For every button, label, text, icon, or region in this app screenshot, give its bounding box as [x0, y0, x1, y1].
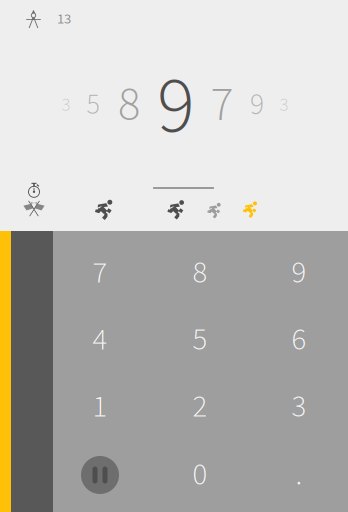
- button[interactable]: Run: [85, 187, 125, 231]
- button[interactable]: 7: [52, 240, 148, 306]
- button[interactable]: 5: [152, 307, 248, 373]
- staticText: .: [295, 453, 302, 497]
- button[interactable]: 8: [152, 240, 248, 306]
- button[interactable]: Interval: [236, 187, 266, 231]
- staticText: 4: [92, 318, 107, 362]
- staticText: 9: [250, 84, 264, 126]
- button[interactable]: Lap timer: [11, 176, 57, 222]
- staticText: 2: [192, 385, 207, 429]
- staticText: 3: [61, 92, 70, 118]
- staticText: 1: [92, 385, 107, 429]
- button[interactable]: 2: [152, 374, 248, 440]
- staticText: 8: [192, 251, 207, 295]
- staticText: 3: [279, 92, 288, 118]
- button[interactable]: 13: [0, 1, 85, 37]
- button[interactable]: Pace: [160, 187, 194, 231]
- button[interactable]: 1: [52, 374, 148, 440]
- staticText: 9: [157, 51, 195, 163]
- staticText: 9: [291, 251, 306, 295]
- button[interactable]: Speed: [200, 188, 230, 232]
- staticText: 6: [291, 318, 306, 362]
- button[interactable]: Pause: [81, 456, 119, 494]
- staticText: 0: [192, 453, 207, 497]
- staticText: 8: [118, 72, 140, 138]
- staticText: 7: [210, 71, 233, 139]
- button[interactable]: 4: [52, 307, 148, 373]
- button[interactable]: 6: [251, 307, 347, 373]
- staticText: 7: [92, 251, 107, 295]
- button[interactable]: 9: [251, 240, 347, 306]
- button[interactable]: 3: [251, 374, 347, 440]
- button[interactable]: 0: [152, 442, 248, 508]
- staticText: 5: [86, 85, 99, 125]
- staticText: 5: [192, 318, 207, 362]
- staticText: 13: [57, 9, 71, 29]
- staticText: 3: [291, 385, 306, 429]
